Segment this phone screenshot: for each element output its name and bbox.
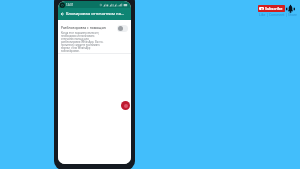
button[interactable]: Notification bell bbox=[286, 4, 295, 13]
button[interactable]: Back bbox=[58, 8, 66, 20]
button[interactable]: Subscribe bbox=[258, 5, 285, 12]
staticText: Subscribe bbox=[265, 6, 283, 11]
staticText: Когда этот параметр включен, необходимо … bbox=[61, 31, 107, 52]
staticText: 14:31 bbox=[66, 3, 74, 7]
button[interactable]: Toggle unlock with fingerprint bbox=[117, 25, 128, 32]
staticText: Разблокировка с помощью bbox=[61, 25, 107, 30]
staticText: Блокировка отпечатком па… bbox=[66, 11, 125, 17]
staticText: Like | Comment | Share bbox=[259, 12, 298, 16]
button[interactable]: Screen recorder bbox=[121, 101, 130, 110]
